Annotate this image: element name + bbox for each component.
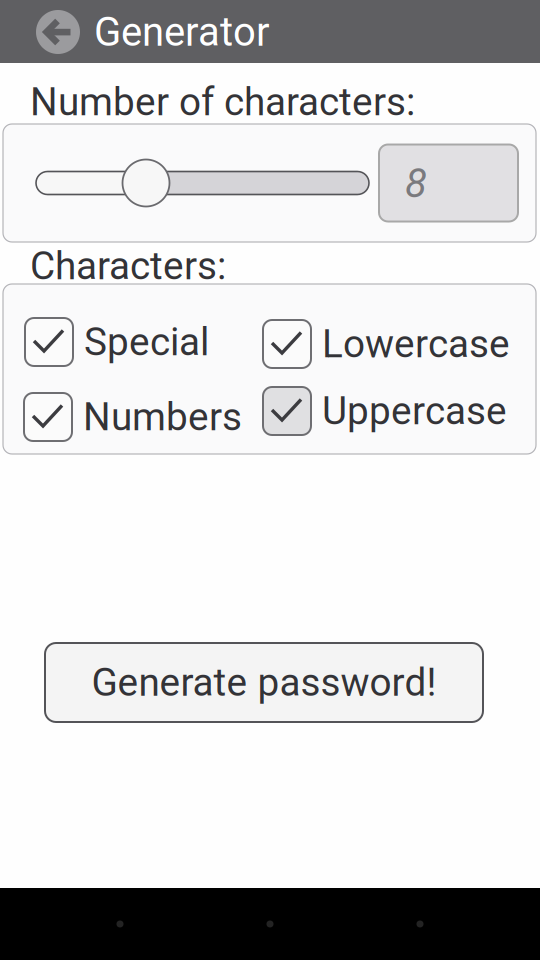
staticText: Lowercase [322, 321, 510, 367]
button[interactable]: Generate password! [45, 643, 483, 722]
staticText: Uppercase [322, 388, 507, 434]
button[interactable]: Uppercase [263, 383, 522, 439]
staticText: Generator [94, 9, 270, 55]
button[interactable]: Numbers [24, 389, 253, 445]
button[interactable]: Back [36, 10, 80, 54]
staticText: Generate password! [91, 660, 436, 705]
button[interactable]: Lowercase [263, 316, 522, 372]
staticText: Characters: [30, 243, 226, 289]
button[interactable]: Special [25, 314, 234, 370]
staticText: Special [84, 319, 209, 365]
staticText: 8 [405, 160, 427, 207]
staticText: Numbers [83, 394, 242, 440]
staticText: Number of characters: [30, 79, 415, 125]
